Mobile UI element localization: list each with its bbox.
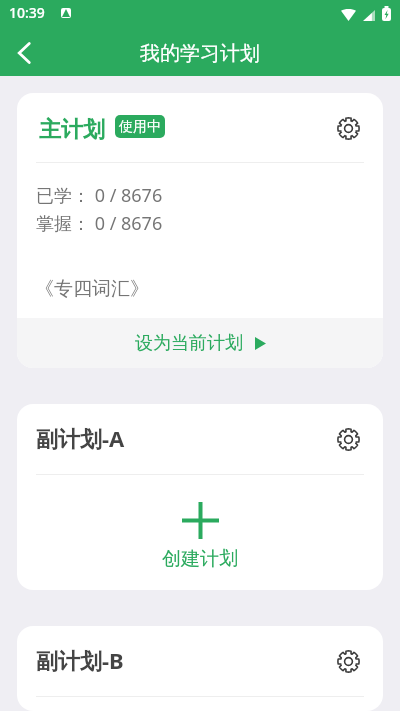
button[interactable]: Settings <box>328 641 368 681</box>
staticText: 10:39 <box>9 3 45 22</box>
button[interactable]: 创建计划 <box>17 475 383 590</box>
button[interactable]: Settings <box>328 419 368 459</box>
staticText: 主计划 <box>39 116 105 144</box>
button[interactable]: 设为当前计划 <box>17 318 383 368</box>
staticText: 已学： 0 / 8676 <box>36 183 163 208</box>
staticText: 设为当前计划 <box>135 332 243 355</box>
staticText: 掌握： 0 / 8676 <box>36 211 163 236</box>
staticText: 副计划-B <box>36 645 124 675</box>
staticText: 副计划-A <box>36 423 125 453</box>
button[interactable]: Settings <box>328 108 368 148</box>
staticText: 创建计划 <box>162 547 238 571</box>
staticText: 《专四词汇》 <box>35 277 149 301</box>
button[interactable]: Back <box>0 28 48 76</box>
staticText: 我的学习计划 <box>140 41 260 66</box>
staticText: 使用中 <box>119 118 161 136</box>
